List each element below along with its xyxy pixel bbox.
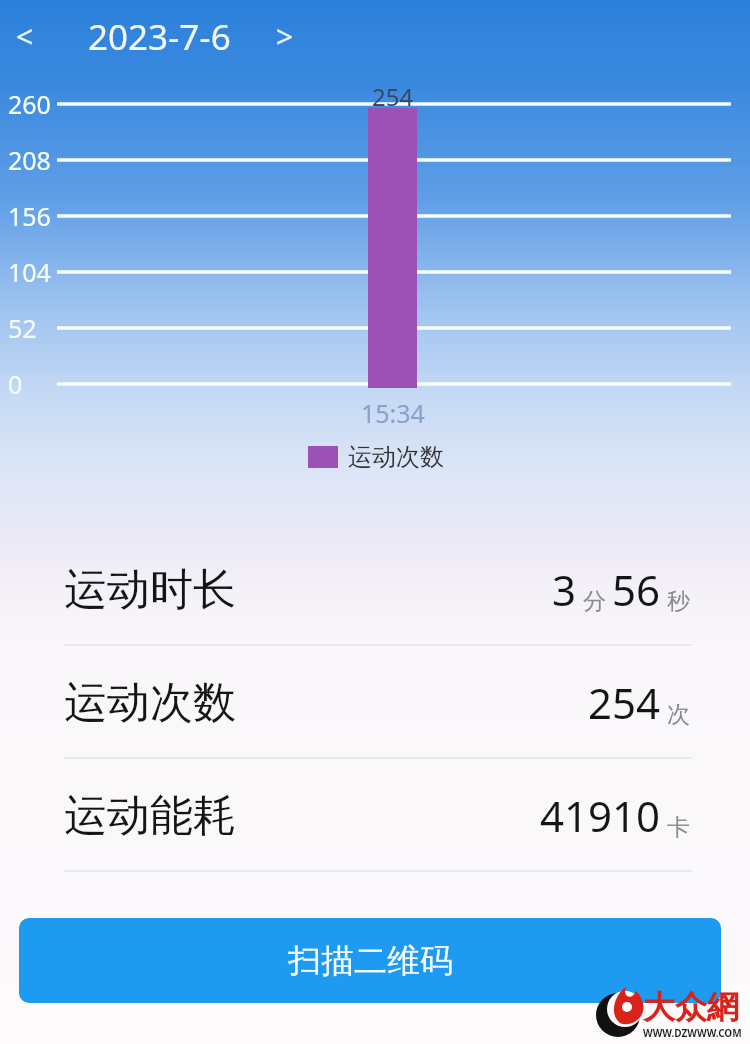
staticText: 次 — [661, 697, 690, 728]
staticText: 2023-7-6 — [88, 13, 236, 61]
button[interactable]: 扫描二维码 — [19, 918, 721, 1003]
staticText: 大众網 — [643, 987, 739, 1027]
staticText: 156 — [8, 199, 51, 233]
staticText: 3 — [552, 561, 577, 618]
staticText: 分 — [577, 584, 612, 615]
staticText: 260 — [8, 87, 51, 121]
staticText: 104 — [8, 255, 51, 289]
staticText: WWW.DZWWW.COM — [643, 1026, 742, 1040]
staticText: 254 — [588, 674, 661, 731]
staticText: 41910 — [540, 787, 661, 844]
staticText: 运动能耗 — [64, 789, 236, 843]
staticText: 扫描二维码 — [288, 940, 453, 982]
staticText: 卡 — [661, 810, 690, 841]
staticText: 208 — [8, 143, 51, 177]
staticText: 秒 — [661, 584, 690, 615]
staticText: 0 — [8, 367, 23, 401]
staticText: 运动时长 — [64, 563, 236, 617]
staticText: 56 — [612, 561, 661, 618]
staticText: 运动次数 — [64, 676, 236, 730]
staticText: 52 — [8, 311, 37, 345]
button[interactable]: < — [6, 12, 44, 61]
staticText: 254 — [372, 80, 414, 108]
staticText: 15:34 — [361, 396, 425, 426]
button[interactable]: > — [266, 12, 304, 61]
staticText: 运动次数 — [348, 442, 444, 472]
